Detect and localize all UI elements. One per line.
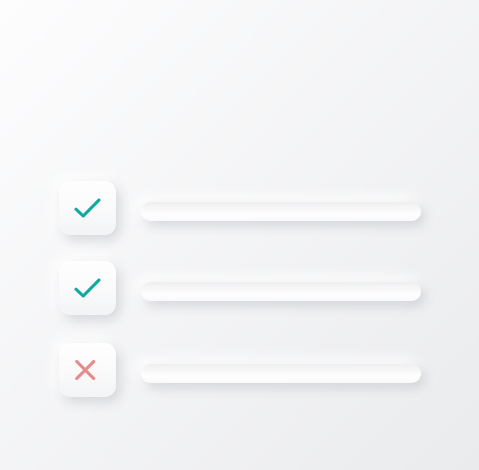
- button[interactable]: Task completed: [59, 261, 116, 315]
- button[interactable]: Task failed: [59, 343, 116, 397]
- button[interactable]: Task: [141, 282, 421, 301]
- button[interactable]: Task: [141, 364, 421, 383]
- button[interactable]: Task: [141, 202, 421, 221]
- button[interactable]: Task completed: [59, 181, 116, 235]
